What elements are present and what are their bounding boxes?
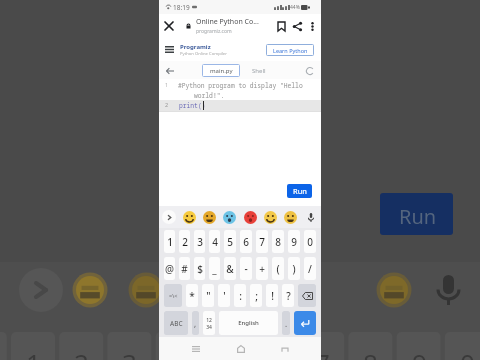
staticText: ! — [271, 289, 274, 303]
staticText: 7 — [315, 345, 330, 360]
staticText: 2 — [165, 101, 169, 108]
staticText: , — [194, 318, 197, 329]
button[interactable]: - — [240, 257, 252, 280]
staticText: : — [239, 289, 242, 303]
button[interactable]: 6 — [240, 230, 252, 253]
button[interactable]: English — [219, 311, 278, 335]
staticText: ) — [292, 262, 296, 276]
staticText: " — [206, 289, 211, 303]
button[interactable]: & — [224, 257, 236, 280]
button[interactable]: / — [304, 257, 316, 280]
button[interactable]: Toggle theme — [303, 64, 316, 77]
staticText: @ — [165, 262, 174, 276]
button[interactable]: Menu — [163, 43, 176, 56]
staticText: Run — [293, 186, 307, 196]
button[interactable]: Shell — [245, 64, 272, 77]
button[interactable]: Back — [163, 64, 176, 77]
button[interactable]: 2 — [179, 230, 190, 253]
staticText: #Python program to display "Hello — [178, 81, 303, 90]
staticText: / — [308, 262, 312, 276]
button[interactable]: More options — [305, 19, 319, 33]
button[interactable]: =\< — [164, 284, 182, 307]
button[interactable]: ( — [272, 257, 284, 280]
button[interactable]: ! — [266, 284, 278, 307]
staticText: Online Python Co... — [196, 17, 259, 27]
staticText: _ — [212, 262, 217, 276]
button[interactable]: Back — [277, 341, 292, 356]
button[interactable]: Share — [289, 18, 305, 34]
button[interactable]: 3 — [194, 230, 205, 253]
staticText: 9 — [412, 345, 427, 360]
button[interactable]: Voice input — [304, 210, 318, 224]
staticText: Run — [399, 203, 437, 230]
button[interactable]: Enter — [294, 311, 316, 335]
staticText: 44% — [290, 4, 300, 11]
button[interactable]: Close — [162, 19, 176, 33]
button[interactable]: $ — [194, 257, 205, 280]
staticText: 8 — [363, 345, 378, 360]
staticText: 1 — [26, 345, 41, 360]
button[interactable]: ABC — [164, 311, 188, 335]
button[interactable]: * — [186, 284, 198, 307]
button[interactable]: @ — [164, 257, 175, 280]
staticText: 1 — [165, 81, 169, 88]
staticText: 3 — [197, 235, 203, 249]
button[interactable]: 1 — [164, 230, 175, 253]
button[interactable]: Expand emoji — [162, 210, 176, 224]
staticText: programiz.com — [196, 28, 232, 35]
staticText: + — [259, 262, 265, 276]
staticText: ABC — [170, 319, 183, 328]
staticText: 0 — [307, 235, 313, 249]
staticText: - — [244, 262, 248, 276]
button[interactable]: 5 — [224, 230, 236, 253]
button[interactable]: Bookmark — [273, 18, 289, 34]
button[interactable]: _ — [209, 257, 220, 280]
staticText: ( — [276, 262, 280, 276]
button[interactable]: 8 — [272, 230, 284, 253]
button[interactable]: main.py — [202, 64, 240, 77]
button[interactable]: " — [202, 284, 214, 307]
staticText: 4 — [212, 235, 218, 249]
button[interactable]: Backspace — [298, 284, 316, 307]
staticText: Shell — [252, 67, 266, 75]
button[interactable]: ) — [288, 257, 300, 280]
staticText: main.py — [210, 67, 233, 75]
staticText: ' — [223, 289, 226, 303]
staticText: 3 — [122, 345, 137, 360]
button[interactable]: 12 34 — [203, 311, 215, 335]
staticText: * — [189, 289, 195, 303]
button[interactable]: Run — [287, 184, 312, 198]
staticText: Learn Python — [273, 47, 308, 54]
button[interactable]: 4 — [209, 230, 220, 253]
staticText: 0 — [460, 345, 475, 360]
staticText: ? — [286, 289, 291, 303]
button[interactable]: 7 — [256, 230, 268, 253]
staticText: $ — [197, 262, 203, 276]
staticText: 2 — [182, 235, 188, 249]
button[interactable]: ? — [282, 284, 294, 307]
button[interactable]: + — [256, 257, 268, 280]
button[interactable]: Recents — [188, 341, 203, 356]
staticText: English — [238, 319, 259, 327]
button[interactable]: 9 — [288, 230, 300, 253]
button[interactable]: 0 — [304, 230, 316, 253]
button[interactable]: ; — [250, 284, 262, 307]
staticText: 12 34 — [206, 317, 212, 330]
button[interactable]: , — [192, 311, 199, 335]
button[interactable]: Learn Python — [266, 44, 314, 56]
staticText: ; — [255, 289, 258, 303]
staticText: & — [226, 262, 234, 276]
staticText: world!". — [194, 91, 225, 100]
staticText: 9 — [291, 235, 297, 249]
staticText: Programiz — [180, 43, 211, 51]
button[interactable]: . — [282, 311, 290, 335]
button[interactable]: : — [234, 284, 246, 307]
button[interactable]: # — [179, 257, 190, 280]
staticText: Python Online Compiler — [180, 51, 227, 57]
staticText: 7 — [259, 235, 265, 249]
button[interactable]: ' — [218, 284, 230, 307]
button[interactable]: Home — [233, 341, 248, 356]
staticText: print() — [179, 101, 206, 110]
